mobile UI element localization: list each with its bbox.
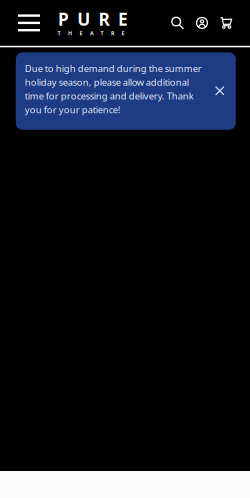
button[interactable]: Search: [165, 7, 190, 38]
staticText: Due to high demand during the summer hol…: [25, 62, 202, 116]
button[interactable]: Menu: [0, 1, 50, 44]
button[interactable]: Dismiss announcement: [207, 76, 233, 106]
staticText: THEATRE: [57, 30, 124, 37]
button[interactable]: Account: [190, 8, 214, 38]
button[interactable]: Shopping cart: [214, 8, 250, 38]
staticText: PURE: [58, 8, 128, 31]
